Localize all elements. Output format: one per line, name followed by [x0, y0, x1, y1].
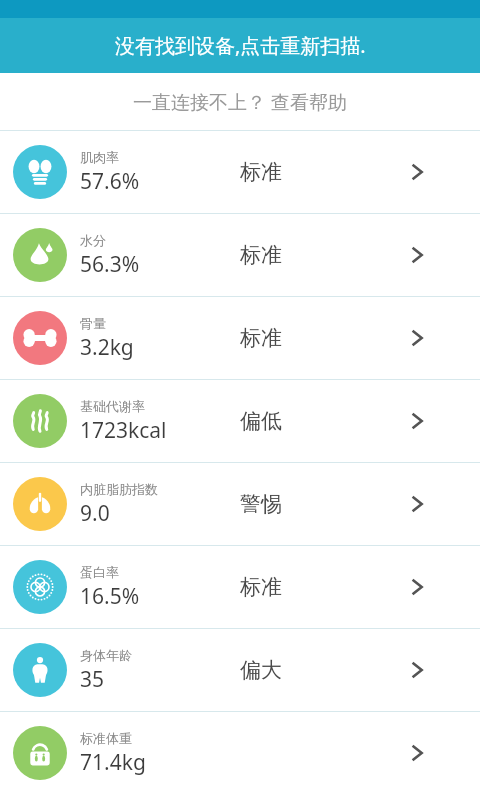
other: 详情: [390, 629, 444, 711]
button[interactable]: 水分: [0, 214, 480, 296]
staticText: 56.3%: [80, 250, 140, 279]
staticText: 标准: [240, 574, 282, 600]
button[interactable]: 一直连接不上？ 查看帮助: [0, 73, 480, 130]
staticText: 35: [80, 665, 105, 694]
button[interactable]: 没有找到设备,点击重新扫描.: [0, 18, 480, 73]
staticText: 3.2kg: [80, 333, 134, 362]
staticText: 9.0: [80, 499, 110, 528]
button[interactable]: 肌肉率: [0, 131, 480, 213]
other: 详情: [390, 214, 444, 296]
other: 详情: [390, 712, 444, 794]
staticText: 1723kcal: [80, 416, 167, 445]
button[interactable]: 基础代谢率: [0, 380, 480, 462]
staticText: 16.5%: [80, 582, 140, 611]
staticText: 71.4kg: [80, 748, 146, 777]
staticText: 没有找到设备,点击重新扫描.: [115, 32, 366, 59]
staticText: 蛋白率: [80, 564, 119, 580]
staticText: 57.6%: [80, 167, 140, 196]
staticText: 标准: [240, 159, 282, 185]
button[interactable]: 骨量: [0, 297, 480, 379]
other: 详情: [390, 463, 444, 545]
button[interactable]: 身体年龄: [0, 629, 480, 711]
staticText: 水分: [80, 232, 106, 248]
staticText: 内脏脂肪指数: [80, 481, 158, 497]
staticText: 身体年龄: [80, 647, 132, 663]
other: 详情: [390, 297, 444, 379]
other: 详情: [390, 131, 444, 213]
button[interactable]: 内脏脂肪指数: [0, 463, 480, 545]
other: 详情: [390, 380, 444, 462]
staticText: 基础代谢率: [80, 398, 145, 414]
staticText: 标准: [240, 325, 282, 351]
staticText: 偏低: [240, 408, 282, 434]
staticText: 偏大: [240, 657, 282, 683]
staticText: 骨量: [80, 315, 106, 331]
staticText: 肌肉率: [80, 149, 119, 165]
other: 详情: [390, 546, 444, 628]
button[interactable]: 蛋白率: [0, 546, 480, 628]
staticText: 标准体重: [80, 730, 132, 746]
button[interactable]: 标准体重: [0, 712, 480, 794]
staticText: 警惕: [240, 491, 282, 517]
staticText: 标准: [240, 242, 282, 268]
staticText: 一直连接不上？ 查看帮助: [133, 89, 347, 115]
